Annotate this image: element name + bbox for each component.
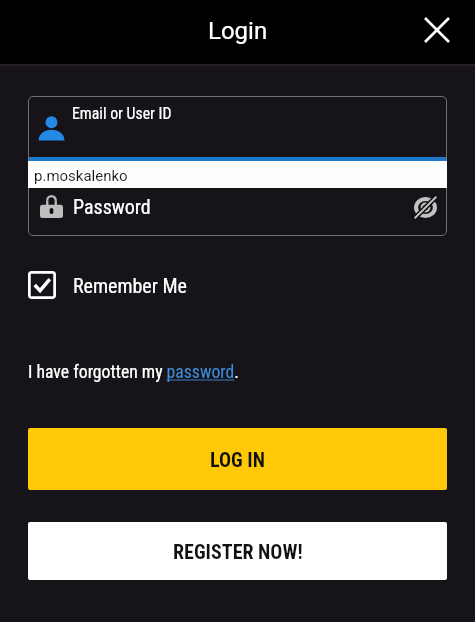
staticText: REGISTER NOW!: [173, 540, 303, 563]
button[interactable]: Show password: [406, 188, 444, 226]
staticText: Login: [208, 17, 268, 45]
button[interactable]: p.moskalenko: [28, 161, 447, 188]
staticText: LOG IN: [210, 448, 265, 471]
button[interactable]: Password field: [28, 161, 447, 236]
button[interactable]: Remember Me: [28, 271, 187, 299]
staticText: Email or User ID: [72, 104, 172, 123]
staticText: p.moskalenko: [34, 167, 128, 185]
button[interactable]: REGISTER NOW!: [28, 522, 447, 580]
staticText: Remember Me: [73, 274, 187, 297]
button[interactable]: Email or User ID field: [28, 96, 447, 157]
staticText: I have forgotten my password.: [28, 362, 239, 383]
staticText: Password: [73, 195, 151, 218]
button[interactable]: Close: [416, 10, 460, 54]
button[interactable]: LOG IN: [28, 428, 447, 490]
